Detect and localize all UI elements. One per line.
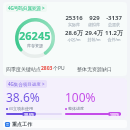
button[interactable]: 26245 [6,13,64,62]
button[interactable]: 929 [84,14,104,27]
staticText: 已立项未使用 [9,106,33,111]
staticText: 整体进度 [68,106,84,111]
staticText: 4G号码归属资源 > [8,5,45,11]
staticText: 38.6% [24,112,34,116]
staticText: 2803 [41,65,53,72]
button[interactable]: 25316 [64,14,84,27]
button[interactable]: 28.6万 [64,29,84,42]
staticText: 合并/m [107,37,121,42]
button[interactable]: 整体无资源缺口 [65,66,124,72]
staticText: 929 [89,14,100,22]
staticText: 11.2万 [105,29,123,37]
staticText: 26245 [19,28,51,43]
other: 重点工作 [5,122,10,127]
staticText: 100% [65,89,96,105]
staticText: 4G集合项目进度 > [8,81,45,87]
staticText: 库存资源 [27,43,43,48]
staticText: 虚拟库 [88,22,100,27]
button[interactable]: 重点工作 [5,120,125,128]
staticText: 实际库 [68,22,80,27]
button[interactable]: 38.6% [6,89,62,116]
staticText: 28.6万 [65,29,83,37]
staticText: 100% [110,112,119,116]
staticText: 小区/m [67,37,81,42]
staticText: 四季度关键站点 [6,66,41,72]
staticText: 38.6% [6,89,40,105]
button[interactable]: 11.2万 [104,29,124,42]
button[interactable]: 100% [65,89,121,116]
staticText: 25316 [65,14,83,22]
staticText: 29.4万 [85,29,103,37]
button[interactable]: 29.4万 [84,29,104,42]
button[interactable]: 四季度关键站点 [6,65,65,72]
staticText: 个PU [53,65,65,72]
button[interactable]: 4G号码归属资源 > [8,5,45,11]
button[interactable]: 4G集合项目进度 > [8,81,45,87]
staticText: 重点工作 [12,121,32,127]
staticText: 总需求 [108,22,120,27]
staticText: 整体无资源缺口 [77,66,112,72]
staticText: 封装/m [87,37,101,42]
staticText: -3137 [106,14,122,22]
button[interactable]: -3137 [104,14,124,27]
